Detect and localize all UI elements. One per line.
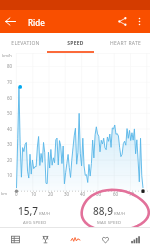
staticText: 60 bbox=[113, 191, 119, 197]
staticText: 20 bbox=[48, 191, 54, 197]
button[interactable]: Health bbox=[90, 228, 120, 250]
staticText: HEART RATE bbox=[110, 40, 141, 47]
staticText: 60 bbox=[7, 95, 13, 101]
button[interactable]: Activities bbox=[0, 228, 30, 250]
staticText: 50 bbox=[96, 191, 102, 197]
staticText: KM/H bbox=[39, 211, 51, 217]
staticText: 30 bbox=[64, 191, 70, 197]
staticText: 15,7 bbox=[18, 204, 38, 218]
button[interactable]: ELEVATION bbox=[0, 33, 50, 53]
staticText: AVG SPEED bbox=[23, 220, 47, 226]
button[interactable]: HEART RATE bbox=[100, 33, 150, 53]
staticText: 80 bbox=[7, 63, 13, 69]
staticText: 88,9 bbox=[93, 204, 113, 218]
button[interactable]: 15,7 bbox=[0, 204, 72, 231]
staticText: MAX SPEED bbox=[97, 220, 122, 226]
staticText: KM/H bbox=[114, 211, 126, 217]
staticText: 70 bbox=[7, 79, 13, 85]
button[interactable]: Stats bbox=[120, 228, 150, 250]
staticText: 10 bbox=[31, 191, 37, 197]
staticText: km bbox=[1, 191, 7, 196]
button[interactable]: Share bbox=[114, 13, 131, 30]
button[interactable]: Trophies bbox=[30, 228, 60, 250]
staticText: 10 bbox=[7, 172, 13, 178]
staticText: SPEED bbox=[67, 40, 84, 47]
staticText: 40 bbox=[80, 191, 86, 197]
button[interactable]: More options bbox=[131, 13, 148, 30]
staticText: 30 bbox=[7, 141, 13, 147]
button[interactable]: 88,9 bbox=[72, 204, 147, 231]
staticText: 40 bbox=[7, 126, 13, 132]
staticText: 20 bbox=[7, 157, 13, 163]
button[interactable]: SPEED bbox=[50, 33, 100, 53]
staticText: 0 bbox=[15, 191, 18, 197]
staticText: ELEVATION bbox=[11, 40, 40, 47]
staticText: 70 bbox=[129, 191, 135, 197]
staticText: Ride bbox=[28, 17, 45, 28]
staticText: km/h bbox=[2, 53, 12, 58]
staticText: 50 bbox=[7, 110, 13, 116]
button[interactable]: Activity bbox=[60, 228, 90, 250]
button[interactable]: Back bbox=[1, 12, 20, 31]
